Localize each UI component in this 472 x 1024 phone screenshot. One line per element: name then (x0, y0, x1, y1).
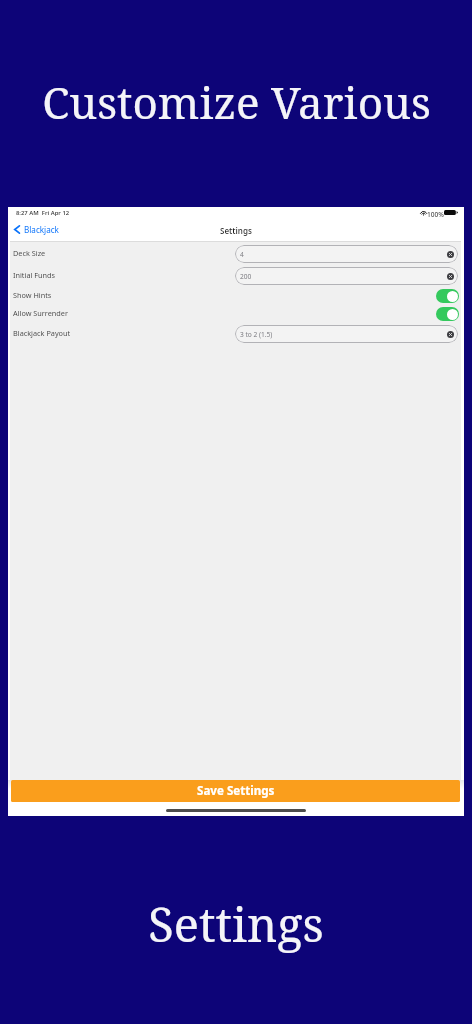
button[interactable]: Blackjack Payout (8, 321, 464, 347)
staticText: 200 (240, 272, 252, 281)
staticText: Settings (148, 892, 324, 956)
staticText: Blackjack (24, 224, 59, 235)
staticText: Allow Surrender (13, 308, 68, 318)
staticText: 3 to 2 (1.5) (240, 330, 273, 339)
button[interactable]: Deck Size (8, 241, 464, 267)
staticText: Initial Funds (13, 270, 56, 280)
button[interactable]: Show Hints (8, 286, 464, 306)
staticText: 8:27 AM Fri Apr 12 (16, 209, 70, 217)
staticText: Deck Size (13, 248, 46, 258)
staticText: Settings (220, 225, 252, 236)
other: Allow Surrender (436, 307, 459, 321)
staticText: Blackjack Payout (13, 328, 71, 338)
staticText: 100% (427, 210, 444, 219)
staticText: Customize Various (42, 72, 431, 132)
button[interactable]: Blackjack (13, 220, 59, 239)
button[interactable]: Save Settings (11, 780, 460, 802)
button[interactable]: Initial Funds (8, 263, 464, 289)
staticText: Save Settings (197, 783, 275, 799)
staticText: 4 (240, 250, 244, 259)
button[interactable]: Allow Surrender (8, 304, 464, 324)
other: Show Hints (436, 289, 459, 303)
staticText: Show Hints (13, 290, 52, 300)
